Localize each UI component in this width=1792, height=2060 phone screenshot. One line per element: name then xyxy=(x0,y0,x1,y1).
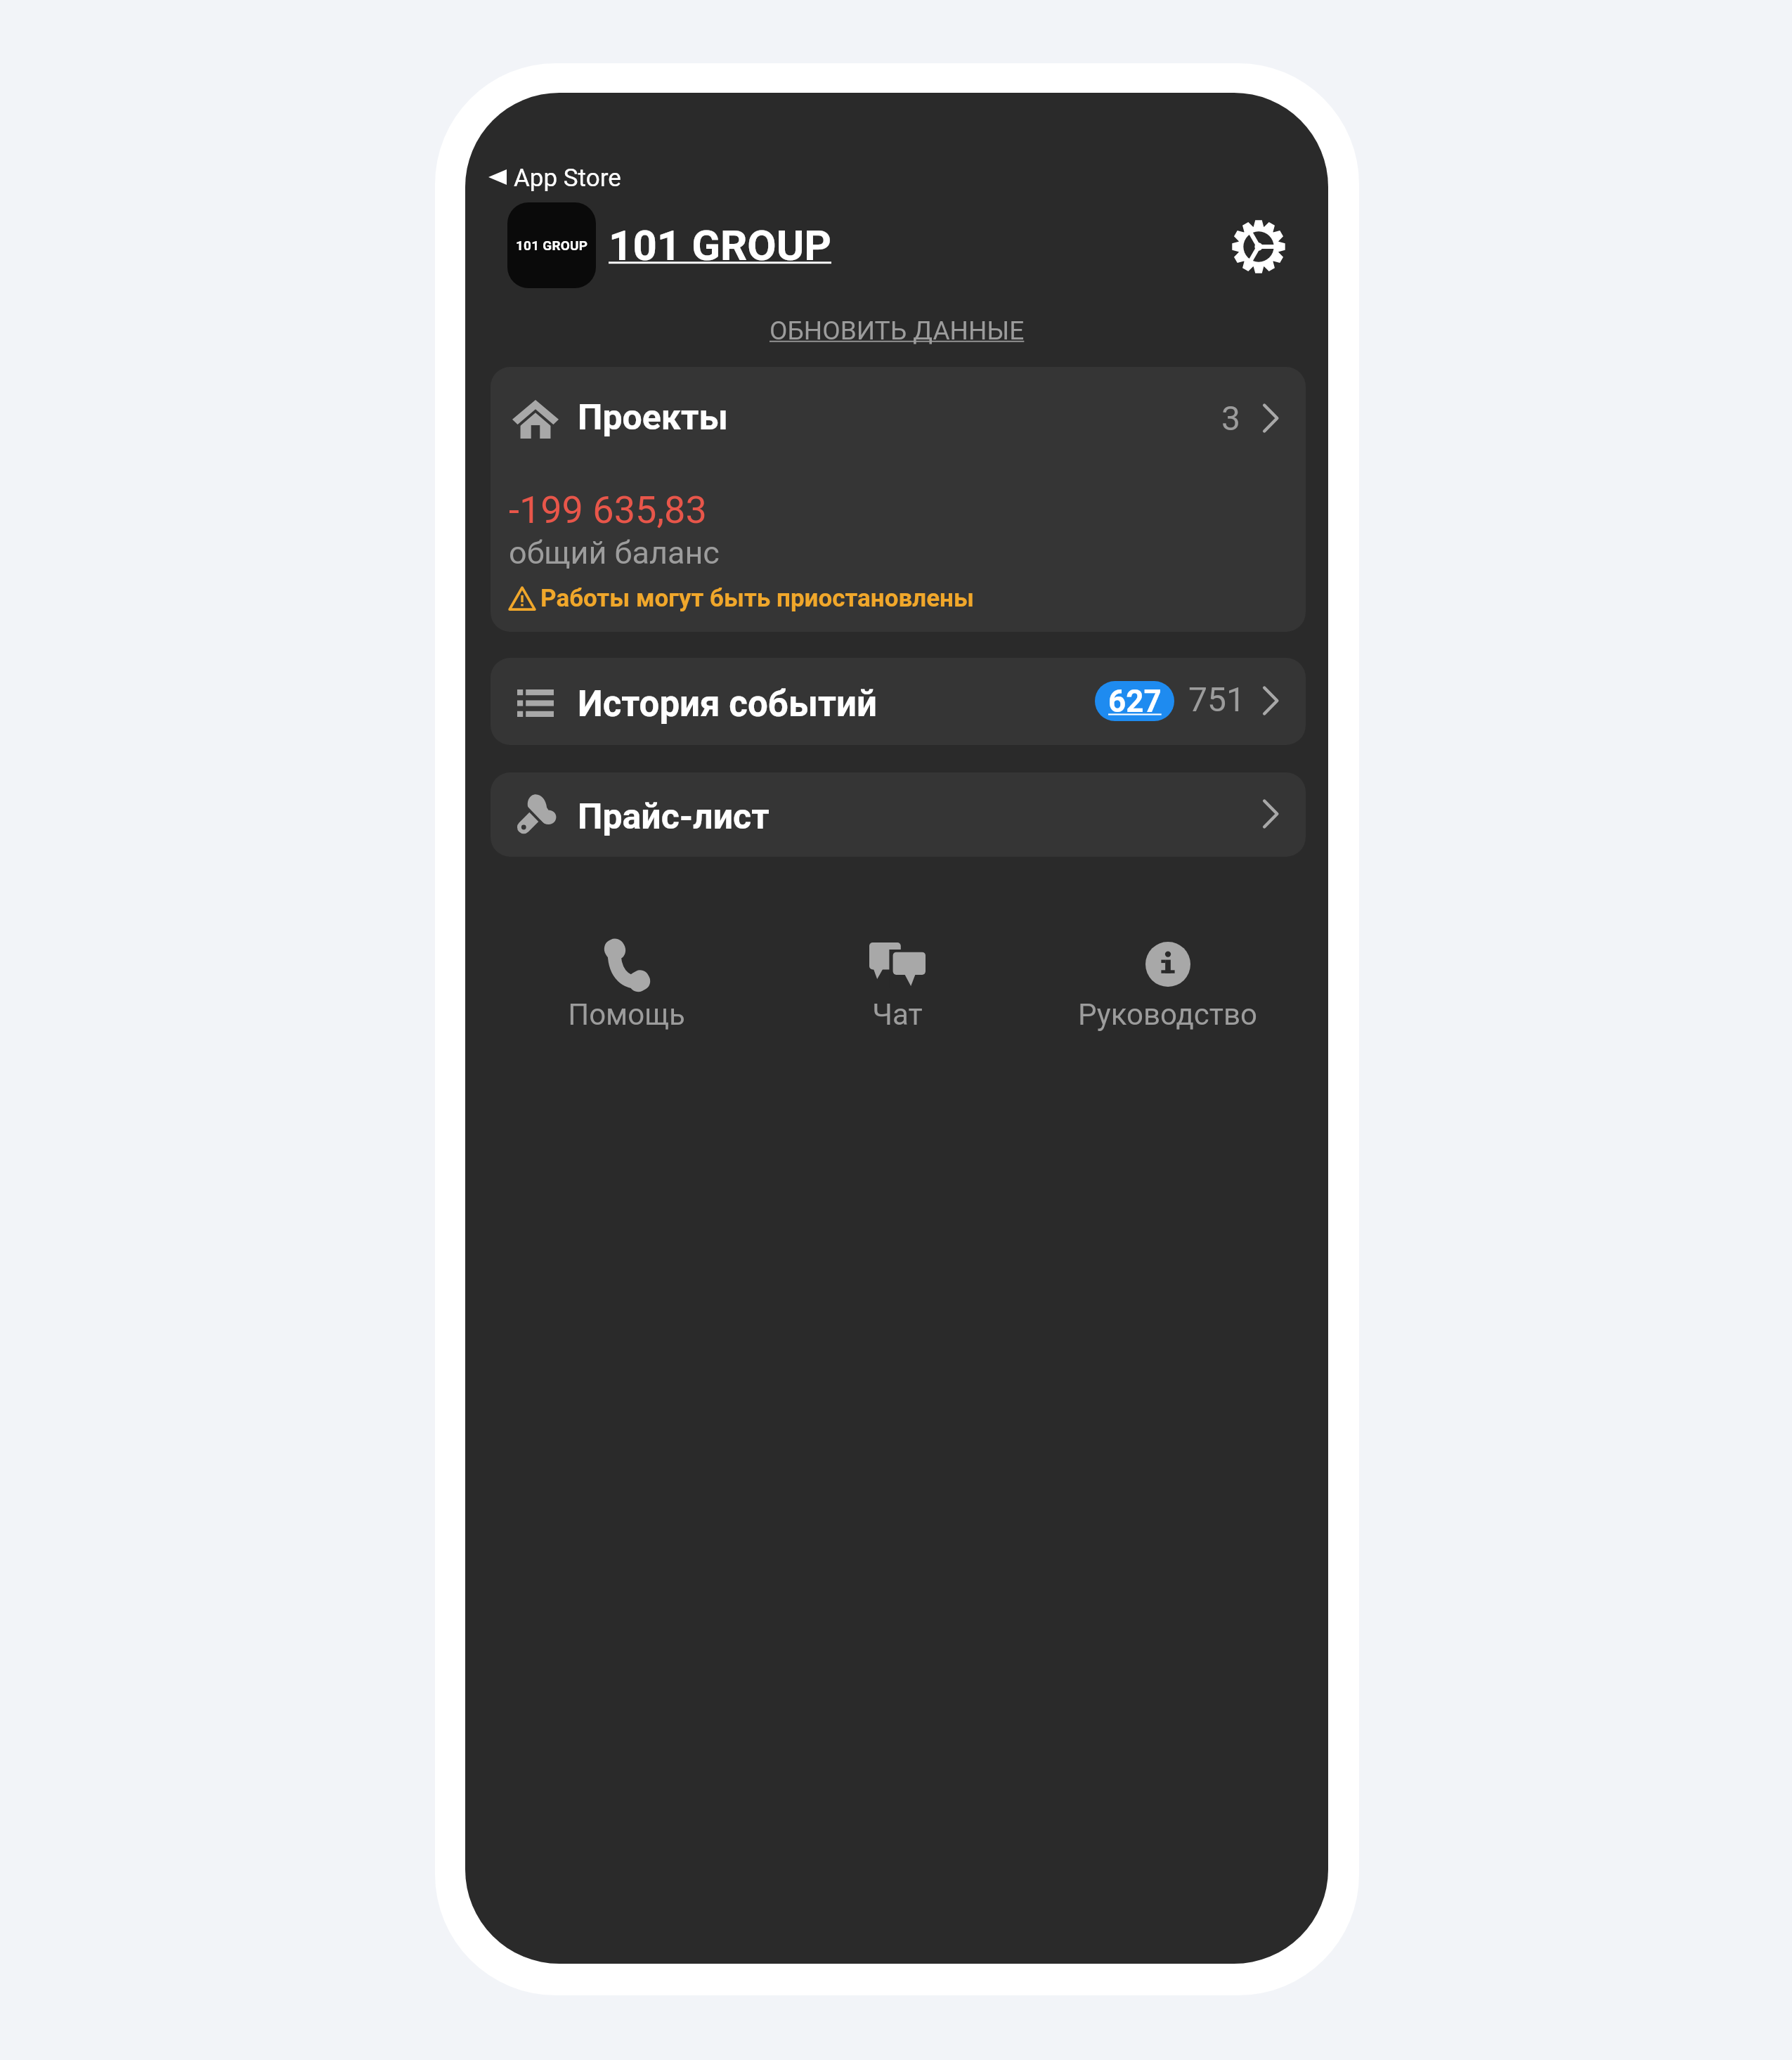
staticText: Помощь xyxy=(568,997,685,1032)
staticText: 751 xyxy=(1188,680,1245,719)
staticText: Работы могут быть приостановлены xyxy=(540,584,974,613)
staticText: -199 635,83 xyxy=(509,488,707,532)
staticText: ОБНОВИТЬ ДАННЫЕ xyxy=(770,316,1025,346)
staticText: 3 xyxy=(1221,399,1240,438)
staticText: Руководство xyxy=(1078,997,1257,1032)
staticText: 627 xyxy=(1108,683,1162,720)
staticText: 101 GROUP xyxy=(516,238,588,253)
staticText: Проекты xyxy=(578,397,728,439)
staticText: История событий xyxy=(578,683,877,725)
button[interactable]: Руководство xyxy=(1032,933,1303,1032)
button[interactable]: Settings xyxy=(1225,213,1292,280)
staticText: 101 GROUP xyxy=(609,221,832,270)
staticText: App Store xyxy=(514,164,621,193)
button[interactable]: Помощь xyxy=(491,933,762,1032)
button[interactable]: Прайс-лист xyxy=(491,772,1306,857)
staticText: Чат xyxy=(872,997,923,1032)
staticText: общий баланс xyxy=(509,534,720,571)
button[interactable]: ОБНОВИТЬ ДАННЫЕ xyxy=(755,307,1039,354)
button[interactable]: История событий xyxy=(491,658,1306,745)
button[interactable]: Чат xyxy=(762,933,1032,1032)
staticText: Прайс-лист xyxy=(578,796,770,838)
button[interactable]: Проекты xyxy=(491,367,1306,632)
button[interactable]: App Store xyxy=(483,160,645,198)
